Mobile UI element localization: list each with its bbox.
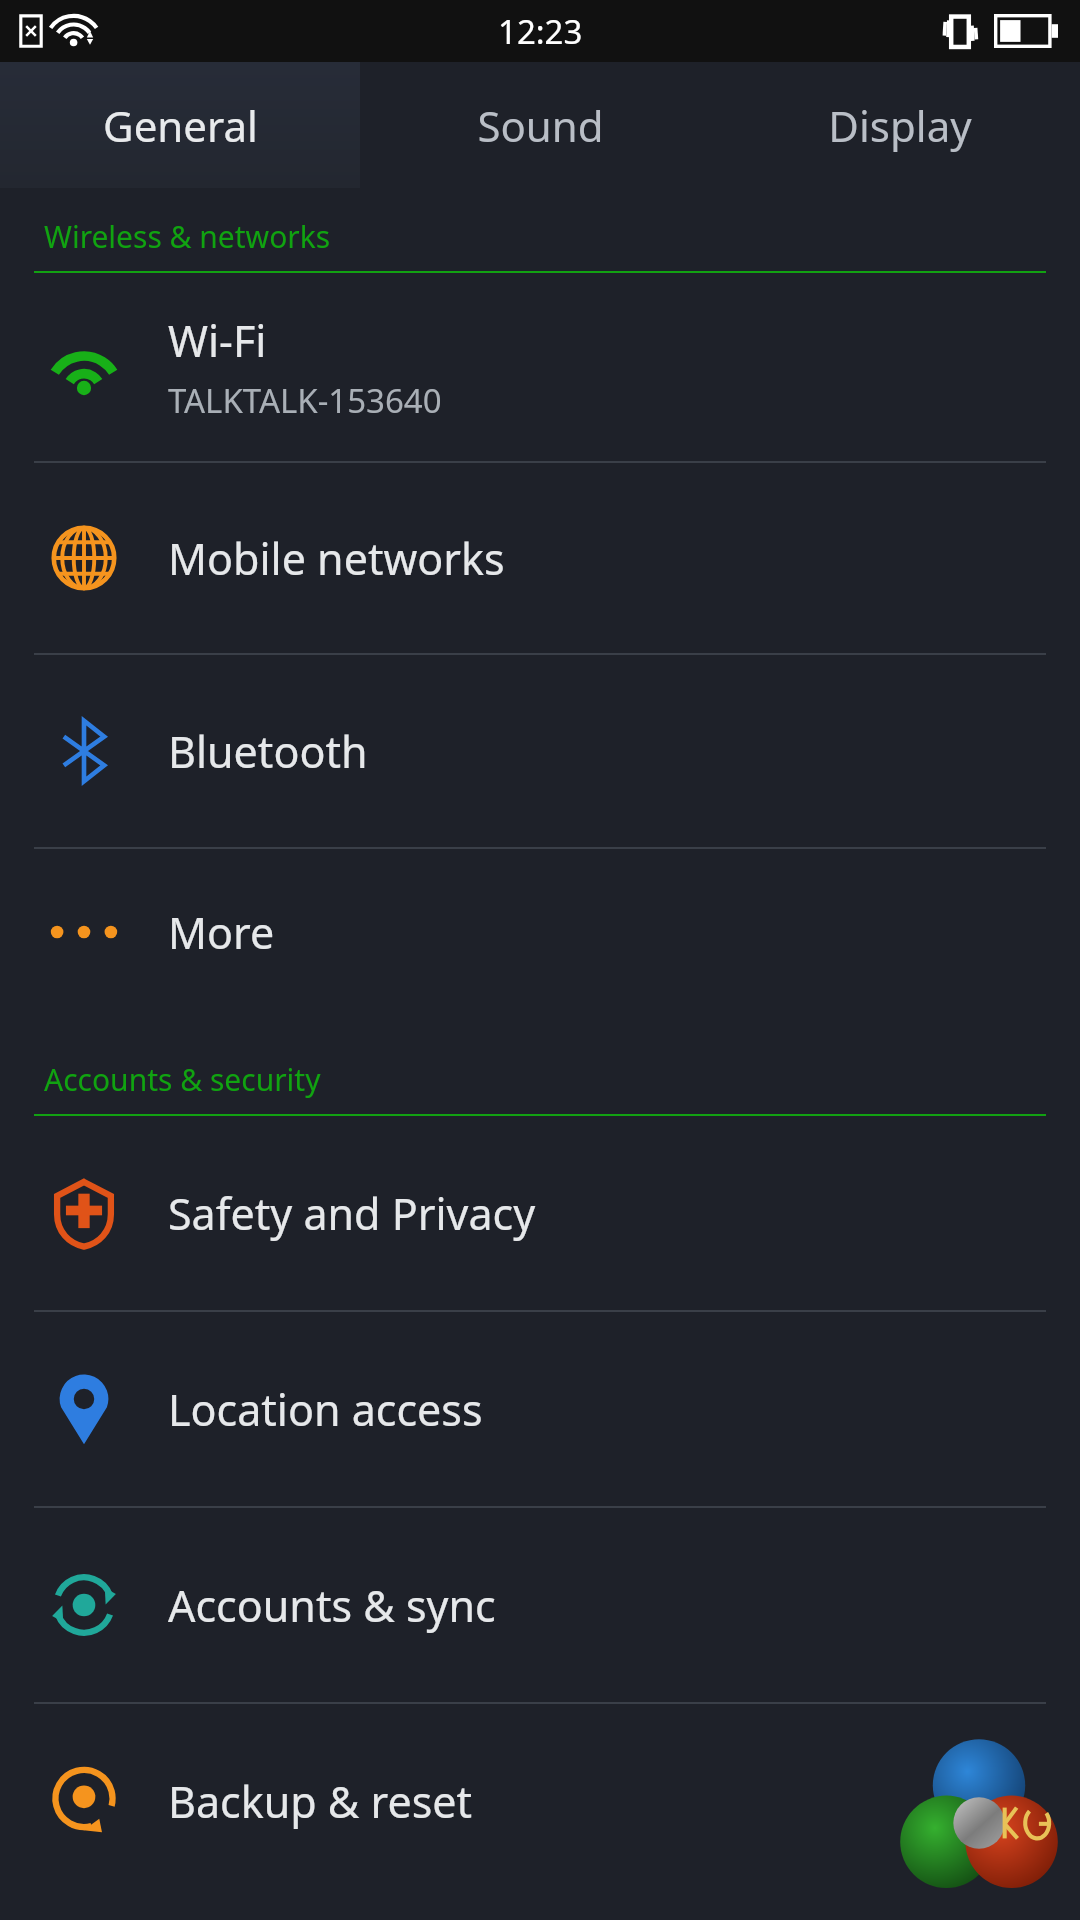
button[interactable]: General	[0, 62, 360, 188]
staticText: Mobile networks	[168, 529, 505, 588]
staticText: Accounts & sync	[168, 1576, 496, 1635]
staticText: Location access	[168, 1380, 483, 1439]
button[interactable]: More	[0, 849, 1080, 1015]
button[interactable]: Mobile networks	[0, 463, 1080, 653]
staticText: Wi-Fi	[168, 311, 267, 370]
staticText: Display	[828, 97, 972, 154]
button[interactable]: Bluetooth	[0, 655, 1080, 847]
staticText: Accounts & security	[44, 1059, 321, 1100]
button[interactable]: Accounts & sync	[0, 1508, 1080, 1702]
staticText: TALKTALK-153640	[168, 378, 442, 423]
button[interactable]: Display	[720, 62, 1080, 188]
staticText: Backup & reset	[168, 1772, 473, 1831]
staticText: Bluetooth	[168, 722, 368, 781]
staticText: Sound	[477, 97, 604, 154]
staticText: More	[168, 903, 275, 962]
staticText: General	[103, 97, 258, 154]
button[interactable]: Location access	[0, 1312, 1080, 1506]
button[interactable]: Safety and Privacy	[0, 1116, 1080, 1310]
button[interactable]: Backup & reset	[0, 1704, 1080, 1898]
staticText: Safety and Privacy	[168, 1184, 536, 1243]
button[interactable]: Sound	[360, 62, 720, 188]
staticText: Wireless & networks	[44, 216, 331, 257]
staticText: 12:23	[498, 9, 583, 54]
button[interactable]: Wi-Fi	[0, 273, 1080, 461]
